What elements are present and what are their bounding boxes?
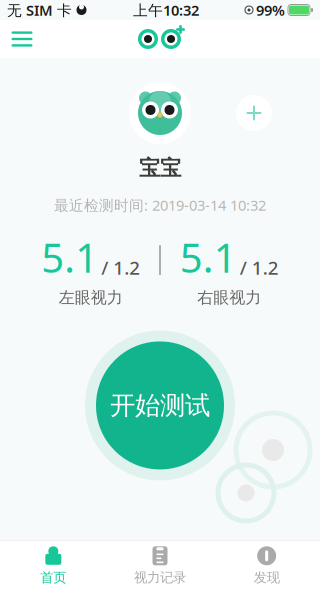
staticText: 首页 [40, 569, 66, 586]
staticText: 5.1 [180, 231, 237, 284]
staticText: 左眼视力 [59, 288, 123, 307]
staticText: 99% [256, 0, 285, 20]
button[interactable]: 添加 [230, 89, 278, 137]
button[interactable]: 视力记录 [107, 541, 213, 590]
staticText: 最近检测时间: 2019-03-14 10:32 [54, 195, 266, 215]
staticText: 上午10:32 [133, 0, 199, 20]
button[interactable]: 发现 [213, 541, 320, 590]
staticText: / 1.2 [240, 255, 279, 280]
staticText: 视力记录 [134, 569, 186, 586]
button[interactable]: 开始测试 [80, 325, 240, 485]
button[interactable]: 菜单 [0, 17, 44, 61]
button[interactable]: 宝宝 [129, 82, 191, 144]
staticText: 右眼视力 [197, 288, 261, 307]
staticText: 开始测试 [110, 390, 210, 421]
staticText: 无 SIM 卡 [7, 0, 72, 20]
staticText: / 1.2 [101, 255, 140, 280]
button[interactable]: 首页 [0, 541, 107, 590]
staticText: 宝宝 [139, 155, 181, 181]
staticText: 5.1 [41, 231, 98, 284]
staticText: 发现 [254, 569, 280, 586]
